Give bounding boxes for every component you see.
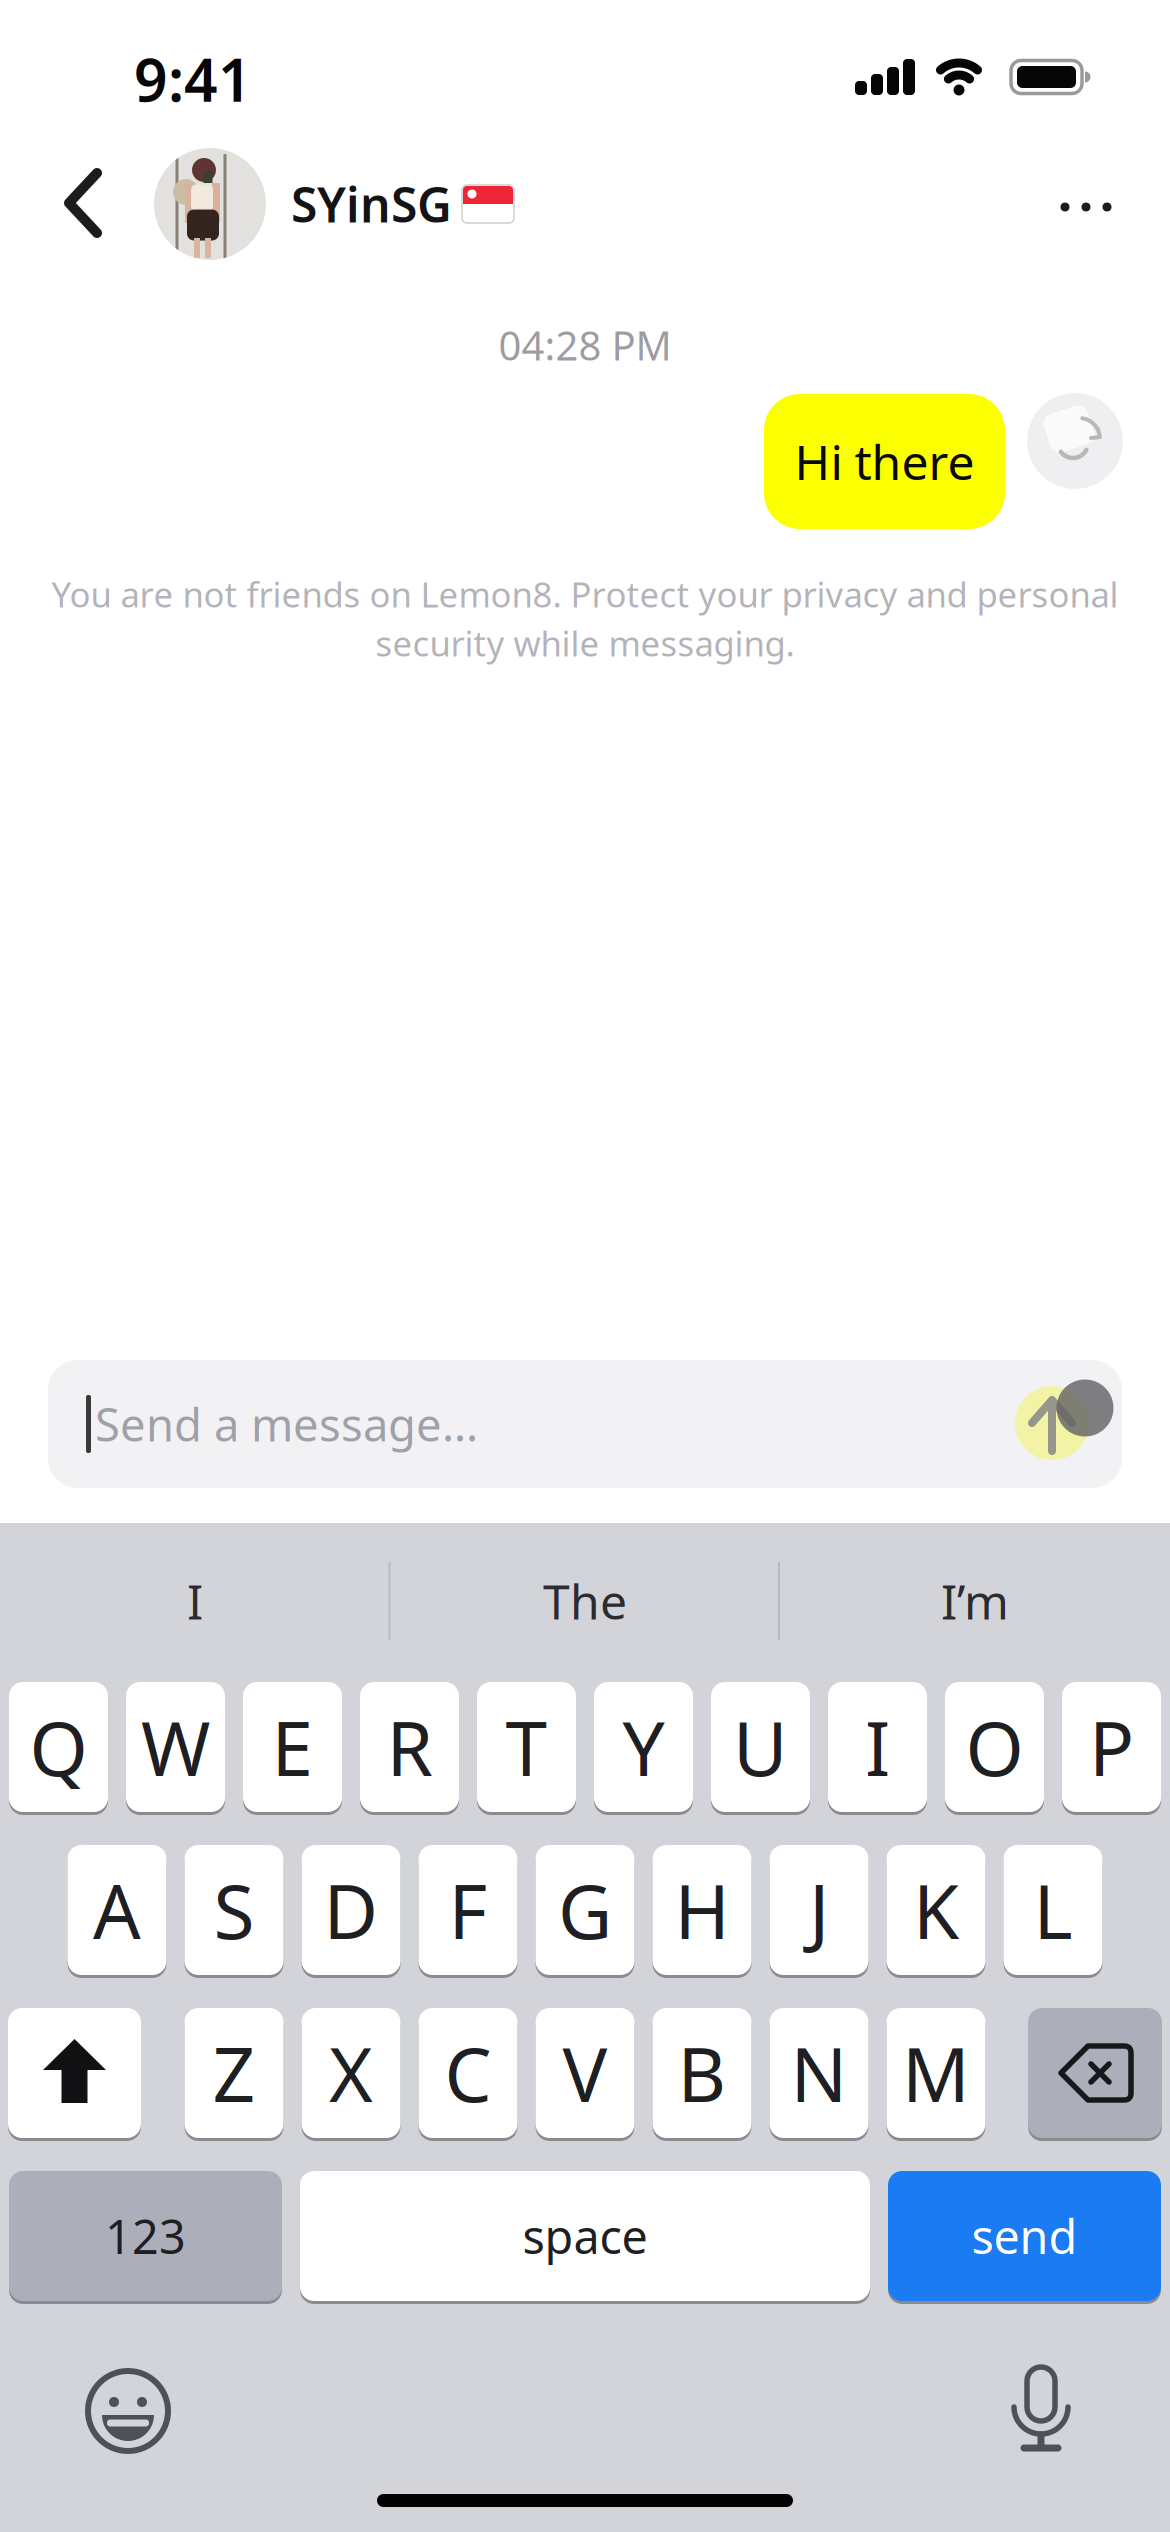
staticText: space [522, 2205, 647, 2267]
button[interactable]: H [652, 1845, 751, 1975]
staticText: P [1089, 1697, 1134, 1797]
button[interactable]: X [301, 2008, 400, 2138]
staticText: I [865, 1697, 890, 1797]
button[interactable]: G [535, 1845, 634, 1975]
button[interactable]: B [652, 2008, 751, 2138]
button[interactable]: K [886, 1845, 985, 1975]
staticText: E [271, 1697, 313, 1797]
button[interactable]: Delete [1028, 2008, 1162, 2138]
button[interactable]: send [888, 2171, 1161, 2301]
button[interactable]: Z [184, 2008, 283, 2138]
button[interactable]: C [418, 2008, 517, 2138]
button[interactable]: Y [594, 1682, 693, 1812]
staticText: You are not friends on Lemon8. Protect y… [51, 571, 1118, 617]
staticText: Hi there [794, 430, 974, 493]
staticText: The [543, 1569, 627, 1633]
staticText: 123 [105, 2205, 186, 2267]
button[interactable]: Back [57, 163, 113, 243]
button[interactable]: S [184, 1845, 283, 1975]
staticText: Z [212, 2023, 255, 2123]
button[interactable]: I [25, 1546, 365, 1656]
staticText: Send a message... [95, 1394, 478, 1454]
button[interactable]: I [828, 1682, 927, 1812]
button[interactable]: P [1062, 1682, 1161, 1812]
staticText: K [913, 1860, 959, 1960]
button[interactable]: SYinSG profile [154, 148, 514, 260]
button[interactable]: Q [9, 1682, 108, 1812]
button[interactable]: Send a message [48, 1360, 1122, 1488]
staticText: Y [622, 1697, 664, 1797]
staticText: Q [29, 1697, 87, 1797]
button[interactable]: Send [1015, 1379, 1114, 1460]
staticText: S [213, 1860, 254, 1960]
staticText: I [187, 1569, 203, 1633]
staticText: send [971, 2205, 1077, 2267]
button[interactable]: Shift [8, 2008, 141, 2138]
button[interactable]: M [886, 2008, 985, 2138]
staticText: 04:28 PM [498, 318, 671, 371]
staticText: G [558, 1860, 612, 1960]
staticText: M [902, 2023, 970, 2123]
staticText: L [1033, 1860, 1072, 1960]
staticText: security while messaging. [375, 620, 794, 666]
button[interactable]: Dictation [1011, 2360, 1071, 2456]
staticText: O [965, 1697, 1023, 1797]
button[interactable]: E [243, 1682, 342, 1812]
button[interactable]: A [67, 1845, 166, 1975]
staticText: J [809, 1860, 829, 1960]
button[interactable]: V [535, 2008, 634, 2138]
staticText: R [386, 1697, 432, 1797]
button[interactable]: U [711, 1682, 810, 1812]
staticText: H [674, 1860, 729, 1960]
button[interactable]: More options [1044, 179, 1128, 235]
staticText: A [93, 1860, 141, 1960]
button[interactable]: J [769, 1845, 868, 1975]
staticText: W [141, 1697, 210, 1797]
button[interactable]: 123 [9, 2171, 282, 2301]
button[interactable]: Emoji [85, 2368, 171, 2454]
staticText: U [733, 1697, 788, 1797]
staticText: SYinSG [291, 172, 452, 236]
button[interactable]: F [418, 1845, 517, 1975]
staticText: 9:41 [134, 40, 252, 118]
staticText: C [444, 2023, 491, 2123]
button[interactable]: D [301, 1845, 400, 1975]
button[interactable]: Send a quick reaction [1027, 393, 1123, 489]
button[interactable]: The [415, 1546, 755, 1656]
button[interactable]: space [300, 2171, 870, 2301]
button[interactable]: W [126, 1682, 225, 1812]
staticText: V [562, 2023, 607, 2123]
button[interactable]: R [360, 1682, 459, 1812]
button[interactable]: N [769, 2008, 868, 2138]
button[interactable]: L [1003, 1845, 1102, 1975]
button[interactable]: I’m [805, 1546, 1145, 1656]
staticText: D [323, 1860, 378, 1960]
button[interactable]: O [945, 1682, 1044, 1812]
staticText: F [448, 1860, 487, 1960]
button[interactable]: T [477, 1682, 576, 1812]
staticText: I’m [941, 1569, 1009, 1633]
staticText: X [329, 2023, 373, 2123]
staticText: N [790, 2023, 847, 2123]
staticText: B [677, 2023, 726, 2123]
staticText: T [505, 1697, 547, 1797]
